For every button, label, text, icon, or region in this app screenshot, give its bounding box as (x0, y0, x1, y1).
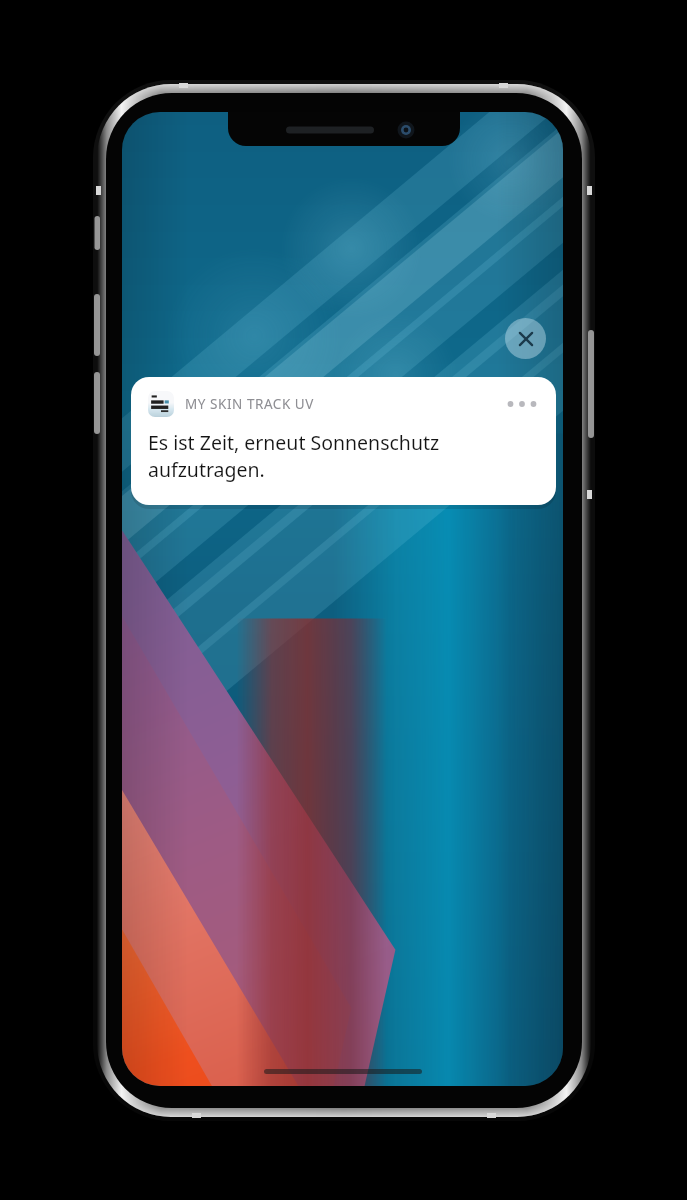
button[interactable]: MY SKIN TRACK UV (131, 377, 556, 505)
button[interactable]: Benachrichtigung schließen (505, 318, 546, 359)
staticText: MY SKIN TRACK UV (185, 395, 314, 413)
button[interactable]: Weitere Optionen (505, 392, 539, 416)
staticText: Es ist Zeit, erneut Sonnenschutz aufzutr… (148, 429, 539, 483)
